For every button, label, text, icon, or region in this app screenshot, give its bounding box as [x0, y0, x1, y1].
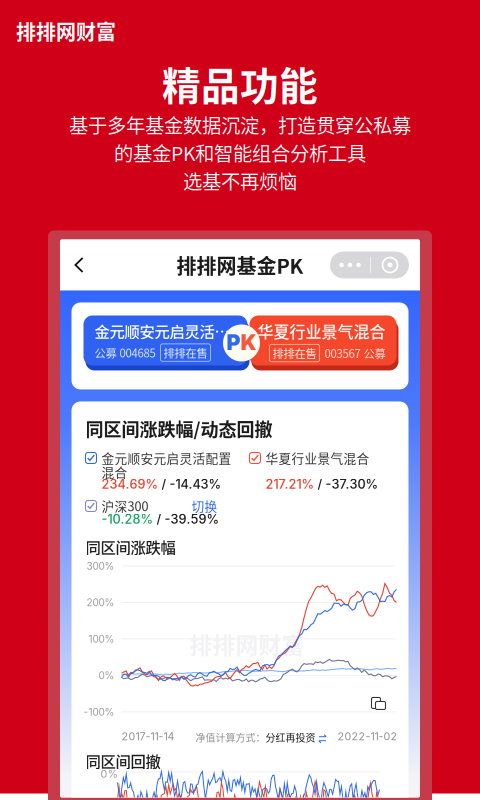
button[interactable]: 更多	[330, 251, 409, 278]
staticText: 003567 公募	[324, 345, 385, 361]
staticText: 排排在售	[163, 344, 207, 361]
staticText: 0%	[100, 767, 117, 780]
staticText: / -37.30%	[317, 476, 378, 492]
button[interactable]: 保存图片	[371, 697, 386, 710]
staticText: 0%	[98, 669, 114, 682]
staticText: 的基金PK和智能组合分析工具	[114, 138, 366, 166]
staticText: P	[226, 330, 240, 355]
staticText: -100%	[83, 706, 114, 718]
button[interactable]: 返回	[74, 243, 108, 287]
staticText: 金元顺安元启灵活…	[94, 320, 229, 342]
staticText: 排排在售	[272, 345, 316, 361]
staticText: 基于多年基金数据沉淀，打造贯穿公私募	[69, 110, 411, 138]
staticText: 217.21%	[265, 476, 314, 492]
staticText: 排排网财富	[16, 16, 116, 45]
staticText: 沪深300	[101, 496, 148, 515]
staticText: 同区间涨跌幅	[85, 535, 175, 558]
staticText: 公募 004685	[94, 344, 155, 361]
staticText: 华夏行业景气混合	[257, 319, 385, 342]
staticText: 234.69%	[101, 476, 158, 492]
staticText: 切换	[191, 496, 217, 515]
staticText: 300%	[86, 560, 114, 572]
staticText: K	[240, 330, 256, 355]
staticText: 2017-11-14	[121, 730, 174, 743]
staticText: -10.28%	[101, 511, 153, 527]
staticText: 华夏行业景气混合	[265, 448, 369, 467]
staticText: 200%	[86, 596, 114, 609]
staticText: 金元顺安元启灵活配置	[101, 448, 231, 467]
staticText: 混合	[101, 462, 127, 481]
staticText: 2022-11-02	[337, 730, 397, 743]
staticText: 净值计算方式：	[195, 730, 265, 744]
staticText: 100%	[88, 633, 114, 645]
button[interactable]: 华夏行业景气混合	[249, 315, 396, 365]
staticText: 精品功能	[162, 55, 318, 111]
staticText: 选基不再烦恼	[183, 166, 297, 194]
staticText: 排排网财富	[189, 627, 304, 660]
staticText: 同区间回撤	[85, 749, 160, 772]
staticText: / -39.59%	[156, 511, 219, 527]
button[interactable]: 切换	[191, 496, 217, 515]
staticText: 同区间涨跌幅/动态回撤	[85, 415, 272, 442]
button[interactable]: 金元顺安元启灵活…	[83, 315, 247, 365]
staticText: 排排网基金PK	[176, 250, 303, 279]
staticText: / -14.43%	[161, 476, 221, 492]
staticText: 分红再投资	[265, 730, 315, 744]
